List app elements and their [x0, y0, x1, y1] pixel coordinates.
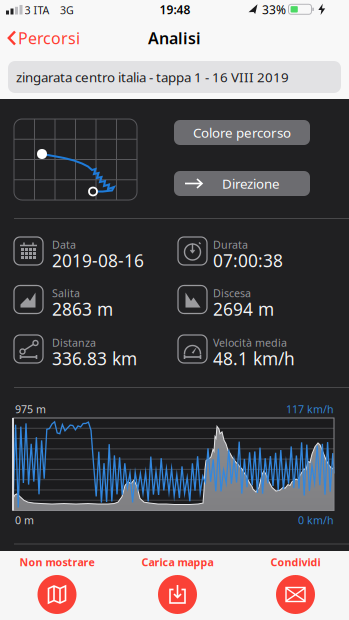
staticText: 0 m [15, 513, 34, 527]
staticText: Velocità media [213, 335, 287, 350]
staticText: 19:48 [159, 1, 190, 17]
staticText: 3G [60, 3, 74, 17]
button[interactable]: Non mostrare [2, 551, 112, 617]
staticText: Colore percorso [193, 124, 291, 141]
staticText: 0 km/h [298, 513, 334, 527]
staticText: zingarata centro italia - tappa 1 - 16 V… [16, 68, 289, 86]
staticText: 2863 m [52, 297, 113, 320]
staticText: 3 ITA [24, 3, 49, 17]
staticText: 48.1 km/h [213, 347, 295, 370]
staticText: Carica mappa [141, 555, 213, 569]
staticText: Analisi [148, 27, 201, 49]
staticText: Direzione [222, 175, 280, 192]
staticText: 336.83 km [52, 347, 137, 370]
staticText: 33% [262, 1, 286, 17]
staticText: Percorsi [18, 27, 80, 49]
staticText: 2019-08-16 [52, 249, 144, 272]
staticText: Non mostrare [19, 555, 94, 569]
staticText: 07:00:38 [213, 249, 283, 272]
staticText: Discesa [213, 286, 251, 300]
staticText: Salita [52, 286, 80, 300]
button[interactable]: Back to Percorsi [8, 20, 88, 56]
staticText: 117 km/h [286, 402, 334, 416]
staticText: Data [52, 237, 76, 252]
button[interactable]: Carica mappa [122, 551, 232, 617]
staticText: Durata [213, 237, 248, 252]
staticText: 2694 m [213, 297, 274, 320]
button[interactable]: Direzione [174, 171, 310, 196]
staticText: 975 m [15, 402, 46, 416]
button[interactable]: Condividi [240, 551, 349, 617]
button[interactable]: Track title [8, 61, 341, 93]
button[interactable]: Colore percorso [174, 120, 310, 145]
staticText: Distanza [52, 335, 96, 350]
staticText: Condividi [270, 555, 320, 569]
